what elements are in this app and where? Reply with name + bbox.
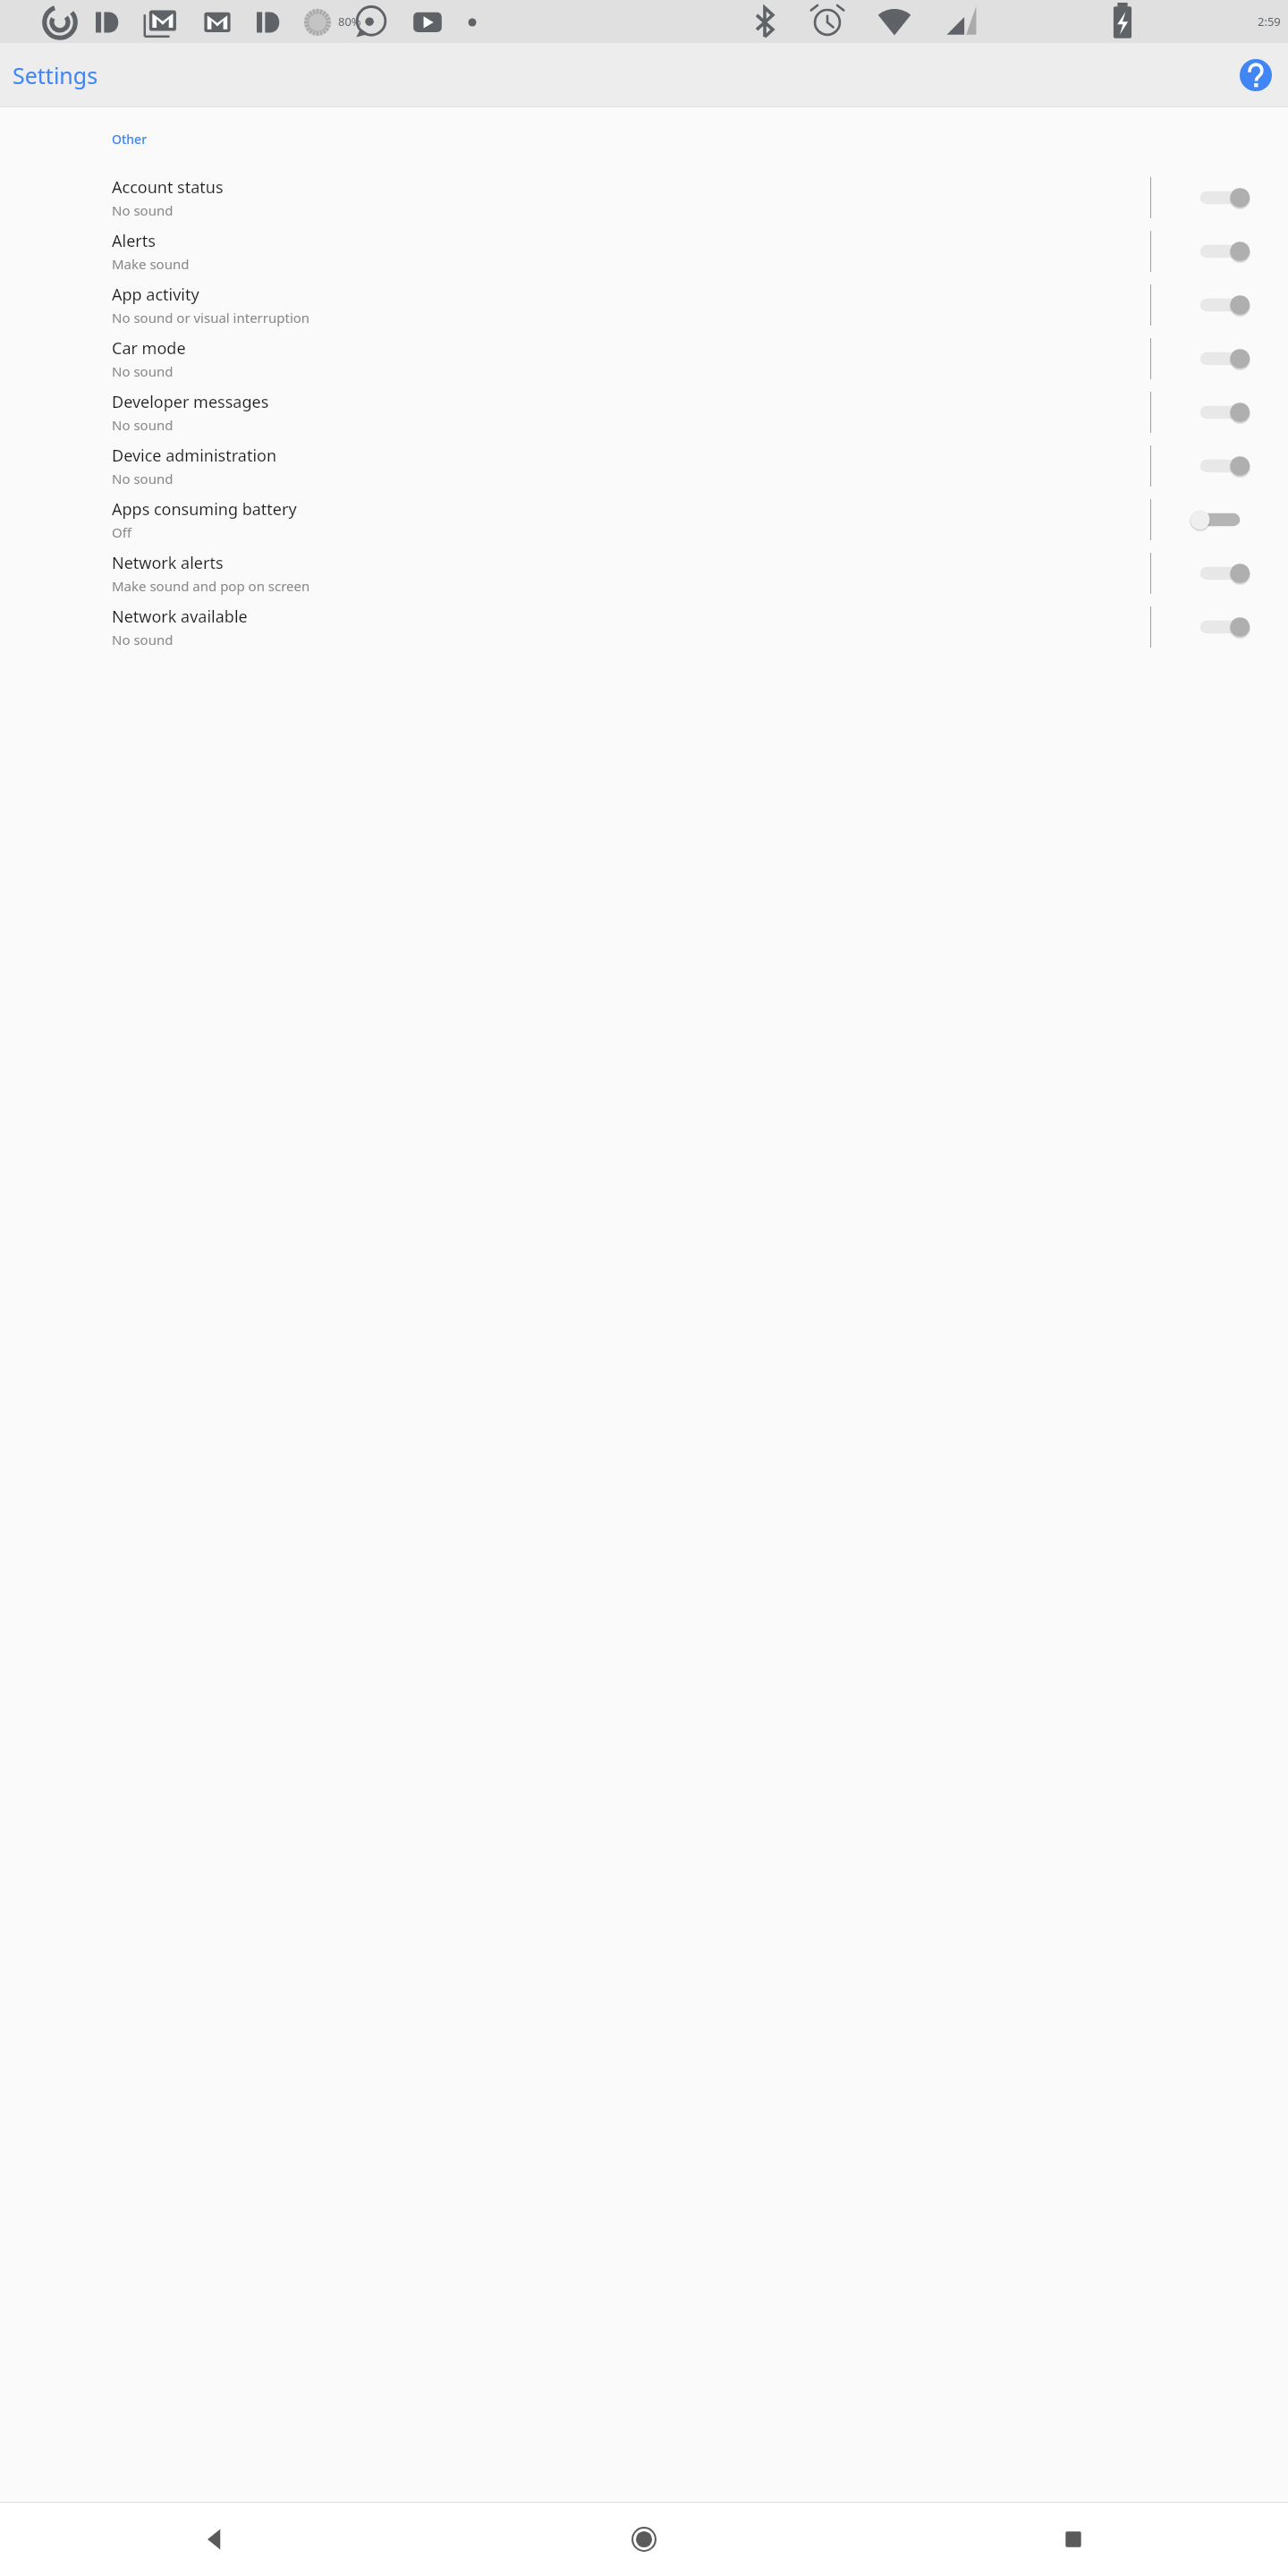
button[interactable]: Home — [429, 2503, 859, 2576]
button[interactable]: Account status — [0, 171, 1288, 225]
staticText: Account status — [112, 176, 224, 199]
staticText: Alerts — [112, 230, 156, 252]
button[interactable]: Apps consuming battery toggle — [1151, 493, 1288, 547]
button[interactable]: Network available — [0, 600, 1288, 654]
staticText: Off — [112, 523, 132, 541]
staticText: No sound — [112, 416, 174, 434]
button[interactable]: Developer messages toggle — [1151, 386, 1288, 439]
button[interactable]: Help — [1233, 52, 1279, 98]
staticText: 80% — [338, 13, 361, 30]
staticText: Apps consuming battery — [112, 498, 297, 521]
staticText: Make sound and pop on screen — [112, 577, 310, 595]
button[interactable]: App activity — [0, 278, 1288, 332]
staticText: 2:59 — [1258, 13, 1281, 30]
staticText: Device administration — [112, 445, 277, 467]
button[interactable]: Apps consuming battery — [0, 493, 1288, 547]
button[interactable]: Developer messages — [0, 386, 1288, 439]
button[interactable]: Network alerts toggle — [1151, 547, 1288, 600]
button[interactable]: Network alerts — [0, 547, 1288, 600]
staticText: Other — [112, 131, 148, 148]
button[interactable]: Alerts — [0, 225, 1288, 278]
staticText: Make sound — [112, 255, 190, 273]
staticText: No sound or visual interruption — [112, 309, 310, 326]
staticText: App activity — [112, 284, 199, 306]
button[interactable]: Account status toggle — [1151, 171, 1288, 225]
staticText: No sound — [112, 201, 174, 219]
button[interactable]: Network available toggle — [1151, 600, 1288, 654]
staticText: No sound — [112, 362, 174, 380]
button[interactable]: Car mode toggle — [1151, 332, 1288, 386]
staticText: Car mode — [112, 337, 186, 360]
button[interactable]: Recent apps — [859, 2503, 1288, 2576]
staticText: Network available — [112, 606, 248, 628]
button[interactable]: App activity toggle — [1151, 278, 1288, 332]
staticText: Developer messages — [112, 391, 269, 413]
staticText: No sound — [112, 631, 174, 648]
staticText: Settings — [13, 60, 98, 90]
button[interactable]: Alerts toggle — [1151, 225, 1288, 278]
button[interactable]: Back — [0, 2503, 429, 2576]
button[interactable]: Device administration toggle — [1151, 439, 1288, 493]
staticText: Network alerts — [112, 552, 224, 574]
button[interactable]: Car mode — [0, 332, 1288, 386]
button[interactable]: Device administration — [0, 439, 1288, 493]
staticText: No sound — [112, 470, 174, 487]
